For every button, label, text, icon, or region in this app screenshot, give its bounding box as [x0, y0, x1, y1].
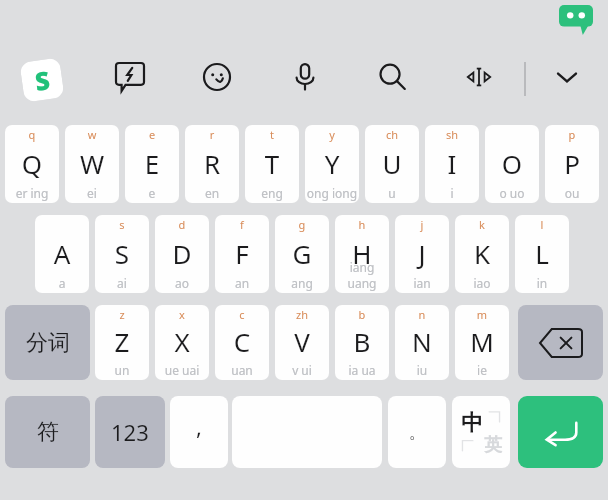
button[interactable]: f [215, 215, 269, 293]
staticText: ia ua [335, 362, 389, 378]
staticText: W [65, 146, 119, 181]
button[interactable]: x [155, 305, 209, 380]
staticText: d [155, 217, 209, 232]
button[interactable]: O [485, 125, 539, 203]
staticText: ou [545, 185, 599, 201]
staticText: i [425, 185, 479, 201]
staticText: O [485, 146, 539, 181]
staticText: m [455, 307, 509, 322]
button[interactable]: q [5, 125, 59, 203]
staticText: c [215, 307, 269, 322]
button[interactable]: l [515, 215, 569, 293]
button[interactable]: w [65, 125, 119, 203]
button[interactable]: 分词 [5, 305, 90, 380]
staticText: 符 [37, 418, 59, 446]
button[interactable]: Quick phrases [108, 55, 152, 99]
button[interactable]: s [95, 215, 149, 293]
staticText: 123 [111, 417, 149, 447]
button[interactable]: 符 [5, 396, 90, 468]
staticText: b [335, 307, 389, 322]
button[interactable]: 123 [95, 396, 165, 468]
button[interactable]: Search [370, 55, 414, 99]
staticText: ue uai [155, 362, 209, 378]
staticText: L [515, 236, 569, 271]
staticText: 中 [461, 409, 483, 437]
staticText: e [125, 127, 179, 142]
button[interactable]: Backspace [518, 305, 603, 380]
staticText: U [365, 146, 419, 181]
button[interactable]: c [215, 305, 269, 380]
button[interactable]: j [395, 215, 449, 293]
button[interactable]: Messages [559, 5, 593, 35]
staticText: ao [155, 275, 209, 291]
staticText: n [395, 307, 449, 322]
staticText: J [395, 236, 449, 271]
button[interactable]: g [275, 215, 329, 293]
staticText: u [365, 185, 419, 201]
button[interactable]: Enter [518, 396, 603, 468]
button[interactable]: Emoji [195, 55, 239, 99]
staticText: s [95, 217, 149, 232]
staticText: p [545, 127, 599, 142]
staticText: B [335, 324, 389, 359]
button[interactable]: k [455, 215, 509, 293]
staticText: I [425, 146, 479, 181]
button[interactable]: t [245, 125, 299, 203]
button[interactable]: n [395, 305, 449, 380]
button[interactable]: Move cursor [457, 55, 501, 99]
staticText: en [185, 185, 239, 201]
staticText: ian [395, 275, 449, 291]
button[interactable]: sh [425, 125, 479, 203]
staticText: an [215, 275, 269, 291]
staticText: F [215, 236, 269, 271]
button[interactable]: , [170, 396, 228, 468]
staticText: er ing [5, 185, 59, 201]
staticText: ei [65, 185, 119, 201]
button[interactable]: d [155, 215, 209, 293]
staticText: M [455, 324, 509, 359]
staticText: in [515, 275, 569, 291]
staticText: A [35, 236, 89, 271]
staticText: iao [455, 275, 509, 291]
staticText: a [35, 275, 89, 291]
staticText: 英 [484, 434, 502, 457]
staticText: 。 [409, 422, 426, 443]
button[interactable]: 中 [452, 396, 510, 468]
staticText: w [65, 127, 119, 142]
staticText: Q [5, 146, 59, 181]
staticText: zh [275, 307, 329, 322]
button[interactable]: A [35, 215, 89, 293]
staticText: ie [455, 362, 509, 378]
staticText: ai [95, 275, 149, 291]
staticText: o uo [485, 185, 539, 201]
button[interactable]: Voice input [283, 55, 327, 99]
staticText: f [215, 217, 269, 232]
staticText: C [215, 324, 269, 359]
button[interactable]: Sogou input settings [18, 56, 66, 104]
staticText: g [275, 217, 329, 232]
button[interactable]: 。 [388, 396, 446, 468]
staticText: E [125, 146, 179, 181]
button[interactable]: zh [275, 305, 329, 380]
button[interactable]: r [185, 125, 239, 203]
staticText: e [125, 185, 179, 201]
button[interactable]: b [335, 305, 389, 380]
staticText: , [196, 411, 202, 441]
button[interactable]: Hide keyboard [545, 55, 589, 99]
staticText: S [33, 62, 52, 98]
button[interactable]: m [455, 305, 509, 380]
staticText: ch [365, 127, 419, 142]
staticText: P [545, 146, 599, 181]
button[interactable]: h [335, 215, 389, 293]
button[interactable]: p [545, 125, 599, 203]
button[interactable]: e [125, 125, 179, 203]
button[interactable]: z [95, 305, 149, 380]
button[interactable]: y [305, 125, 359, 203]
staticText: G [275, 236, 329, 271]
staticText: iu [395, 362, 449, 378]
staticText: T [245, 146, 299, 181]
button[interactable]: ch [365, 125, 419, 203]
staticText: ong iong [305, 185, 359, 201]
staticText: y [305, 127, 359, 142]
